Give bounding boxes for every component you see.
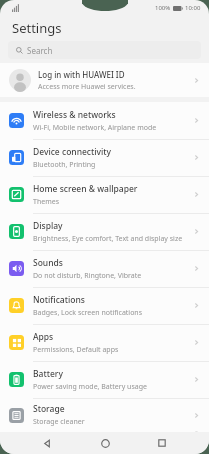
- button[interactable]: Wireless & networks: [0, 102, 209, 139]
- staticText: Badges, Lock screen notifications: [33, 308, 143, 318]
- staticText: Storage cleaner: [33, 417, 85, 427]
- staticText: Access more Huawei services.: [38, 82, 136, 92]
- staticText: Battery: [33, 368, 63, 380]
- staticText: Search: [27, 45, 53, 56]
- button[interactable]: Notifications: [0, 287, 209, 324]
- staticText: Display: [33, 220, 63, 232]
- button[interactable]: Back: [36, 432, 58, 454]
- staticText: 100%: [155, 4, 171, 12]
- staticText: Wi-Fi, Mobile network, Airplane mode: [33, 123, 157, 133]
- button[interactable]: Display: [0, 213, 209, 250]
- button[interactable]: Device connectivity: [0, 139, 209, 176]
- button[interactable]: Sounds: [0, 250, 209, 287]
- button[interactable]: Search: [8, 41, 201, 59]
- button[interactable]: Log in with HUAWEI ID: [0, 63, 209, 97]
- button[interactable]: Apps: [0, 324, 209, 361]
- staticText: Themes: [33, 197, 60, 207]
- staticText: Log in with HUAWEI ID: [38, 69, 125, 80]
- staticText: Notifications: [33, 294, 85, 306]
- staticText: 10:00: [185, 4, 201, 12]
- button[interactable]: Storage: [0, 398, 209, 432]
- button[interactable]: Recent apps: [151, 432, 173, 454]
- staticText: Device connectivity: [33, 146, 112, 158]
- button[interactable]: Battery: [0, 361, 209, 398]
- staticText: Power saving mode, Battery usage: [33, 382, 147, 392]
- staticText: Bluetooth, Printing: [33, 160, 96, 170]
- button[interactable]: Home screen & wallpaper: [0, 176, 209, 213]
- staticText: Brightness, Eye comfort, Text and displa…: [33, 234, 183, 244]
- staticText: Apps: [33, 331, 54, 343]
- staticText: Storage: [33, 403, 65, 415]
- staticText: Permissions, Default apps: [33, 345, 119, 355]
- staticText: Sounds: [33, 257, 63, 269]
- button[interactable]: Home: [94, 432, 116, 454]
- staticText: Home screen & wallpaper: [33, 183, 138, 195]
- staticText: Do not disturb, Ringtone, Vibrate: [33, 271, 142, 281]
- staticText: Wireless & networks: [33, 109, 116, 121]
- staticText: Settings: [12, 19, 62, 37]
